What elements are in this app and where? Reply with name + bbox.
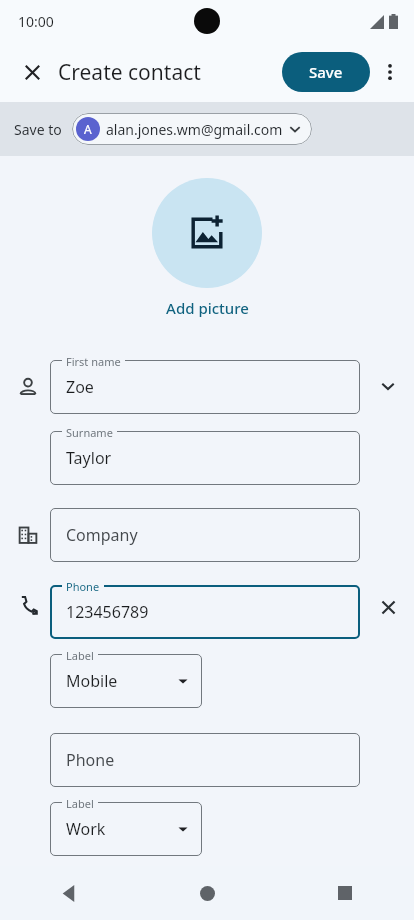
button[interactable]: Close	[10, 50, 54, 94]
button[interactable]: Phone	[50, 733, 360, 787]
staticText: Mobile	[66, 670, 118, 692]
button[interactable]: Company	[50, 508, 360, 562]
button[interactable]: Add picture	[152, 178, 262, 288]
button[interactable]: Phone	[50, 585, 360, 639]
button[interactable]: Home	[138, 866, 276, 920]
staticText: A	[84, 121, 92, 137]
button[interactable]: Clear phone number	[371, 590, 405, 624]
staticText: Zoe	[66, 376, 94, 398]
staticText: Phone	[66, 579, 100, 591]
button[interactable]: Add picture	[166, 298, 249, 318]
staticText: Add picture	[166, 298, 249, 318]
staticText: Company	[66, 524, 138, 546]
button[interactable]: Surname	[50, 431, 360, 485]
staticText: 123456789	[66, 601, 149, 623]
button[interactable]: More options	[370, 52, 410, 92]
button[interactable]: Label	[50, 654, 202, 708]
staticText: First name	[66, 354, 121, 366]
staticText: Label	[66, 648, 94, 660]
button[interactable]: Expand name fields	[372, 370, 404, 402]
staticText: Label	[66, 796, 94, 808]
staticText: Save to	[14, 120, 62, 139]
staticText: Taylor	[66, 447, 112, 469]
staticText: 10:00	[18, 12, 54, 31]
button[interactable]: Save	[282, 52, 370, 92]
staticText: Create contact	[58, 58, 201, 87]
button[interactable]: A	[72, 113, 312, 145]
staticText: Phone	[66, 749, 115, 771]
staticText: Surname	[66, 425, 113, 437]
staticText: alan.jones.wm@gmail.com	[106, 120, 283, 139]
button[interactable]: First name	[50, 360, 360, 414]
button[interactable]: Label	[50, 802, 202, 856]
button[interactable]: Recent apps	[276, 866, 414, 920]
staticText: Work	[66, 818, 106, 840]
button[interactable]: Back	[0, 866, 138, 920]
staticText: Save	[309, 62, 343, 82]
